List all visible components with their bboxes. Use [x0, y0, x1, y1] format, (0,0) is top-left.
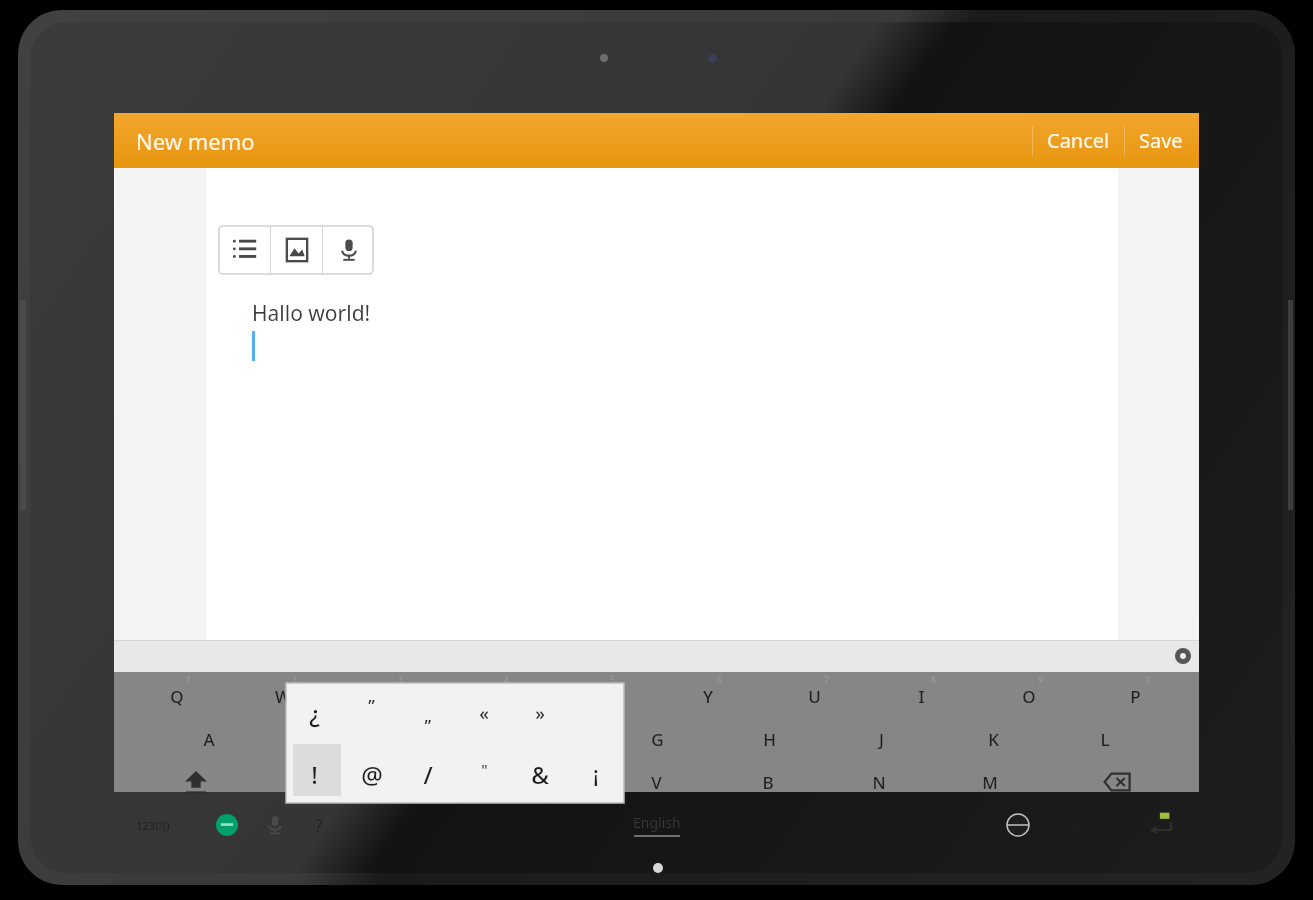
button[interactable]: Emoji: [216, 814, 238, 836]
staticText: Save: [1139, 127, 1183, 154]
button[interactable]: G: [601, 719, 713, 759]
button[interactable]: 123!?(): [130, 812, 176, 839]
staticText: W: [275, 685, 291, 708]
button[interactable]: List: [219, 226, 270, 274]
staticText: G: [651, 728, 664, 751]
staticText: !: [311, 758, 318, 791]
button[interactable]: «: [456, 683, 512, 744]
staticText: ": [481, 759, 488, 779]
staticText: B: [762, 771, 774, 794]
button[interactable]: @: [343, 744, 400, 805]
button[interactable]: Voice input: [323, 226, 374, 274]
staticText: 8: [931, 673, 937, 685]
staticText: »: [535, 701, 545, 726]
button[interactable]: /: [400, 744, 456, 805]
staticText: 7: [824, 673, 830, 685]
staticText: V: [651, 771, 662, 794]
button[interactable]: J: [825, 719, 937, 759]
button[interactable]: S: [265, 719, 377, 759]
staticText: 5: [610, 673, 616, 685]
button[interactable]: P: [1082, 676, 1189, 716]
button[interactable]: Close keyboard: [1175, 648, 1191, 664]
staticText: New memo: [136, 126, 255, 156]
button[interactable]: K: [937, 719, 1049, 759]
button[interactable]: C: [490, 762, 601, 802]
button[interactable]: ¿: [286, 683, 343, 744]
button[interactable]: Cancel: [1033, 115, 1124, 166]
staticText: I: [918, 685, 925, 708]
staticText: 9: [1038, 673, 1044, 685]
button[interactable]: U: [761, 676, 868, 716]
staticText: &: [531, 758, 549, 791]
staticText: ?: [315, 813, 323, 838]
button[interactable]: Change language: [1007, 814, 1029, 836]
button[interactable]: X: [379, 762, 490, 802]
button[interactable]: ?: [310, 808, 328, 843]
staticText: «: [479, 701, 489, 726]
button[interactable]: Insert image: [271, 226, 322, 274]
button[interactable]: V: [601, 762, 712, 802]
button[interactable]: ¡: [568, 744, 624, 805]
staticText: N: [872, 771, 886, 794]
button[interactable]: Backspace: [1045, 762, 1189, 802]
button[interactable]: A: [152, 719, 265, 759]
button[interactable]: M: [934, 762, 1045, 802]
button[interactable]: Z: [268, 762, 379, 802]
staticText: /: [423, 758, 433, 791]
button[interactable]: H: [713, 719, 825, 759]
button[interactable]: &: [512, 744, 568, 805]
button[interactable]: »: [512, 683, 568, 744]
staticText: „: [424, 704, 432, 727]
button[interactable]: Voice input: [264, 814, 286, 836]
staticText: 1: [186, 673, 192, 685]
button[interactable]: B: [712, 762, 823, 802]
staticText: H: [763, 728, 776, 751]
staticText: ”: [368, 694, 375, 717]
button[interactable]: Y: [654, 676, 761, 716]
button[interactable]: Save: [1125, 115, 1199, 166]
staticText: Cancel: [1047, 127, 1110, 154]
button[interactable]: Shift: [124, 762, 268, 802]
staticText: P: [1130, 685, 1141, 708]
staticText: Y: [703, 685, 713, 708]
staticText: K: [988, 728, 999, 751]
staticText: X: [429, 771, 440, 794]
staticText: M: [982, 771, 998, 794]
staticText: 4: [504, 673, 510, 685]
button[interactable]: „: [400, 683, 456, 744]
button[interactable]: I: [868, 676, 975, 716]
staticText: ¡: [593, 760, 599, 789]
button[interactable]: !: [286, 744, 343, 805]
staticText: 3: [398, 673, 404, 685]
staticText: ¿: [309, 697, 320, 730]
staticText: Hallo world!: [252, 299, 371, 328]
staticText: 123!?(): [136, 818, 170, 833]
button[interactable]: Q: [124, 676, 230, 716]
staticText: J: [879, 728, 884, 751]
button[interactable]: English: [633, 813, 681, 837]
staticText: English: [633, 813, 681, 832]
button[interactable]: D: [377, 719, 489, 759]
button[interactable]: E: [336, 676, 442, 716]
button[interactable]: Enter: [1147, 811, 1175, 839]
button[interactable]: T: [548, 676, 654, 716]
button[interactable]: O: [975, 676, 1082, 716]
button[interactable]: R: [442, 676, 548, 716]
button[interactable]: ”: [343, 683, 400, 744]
staticText: C: [540, 771, 551, 794]
staticText: @: [361, 758, 383, 791]
button[interactable]: W: [230, 676, 336, 716]
staticText: S: [316, 728, 326, 751]
button[interactable]: L: [1049, 719, 1161, 759]
button[interactable]: ": [456, 744, 512, 805]
staticText: 2: [292, 673, 298, 685]
button[interactable]: N: [823, 762, 934, 802]
staticText: Q: [170, 685, 184, 708]
